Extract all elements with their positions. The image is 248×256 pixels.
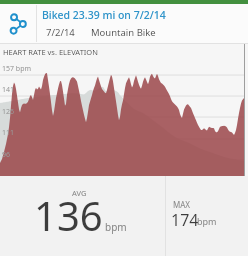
- button[interactable]: Share activity: [0, 4, 36, 43]
- staticText: 96: [2, 150, 11, 160]
- staticText: 7/2/14: [46, 26, 75, 39]
- staticText: Biked 23.39 mi on 7/2/14: [42, 8, 166, 22]
- button[interactable]: MAX: [166, 176, 248, 256]
- staticText: bpm: [105, 220, 127, 234]
- staticText: Mountain Bike: [91, 26, 156, 39]
- staticText: 157 bpm: [2, 64, 31, 74]
- staticText: MAX: [173, 199, 191, 210]
- staticText: 111: [2, 128, 15, 138]
- staticText: 126: [2, 107, 15, 117]
- button[interactable]: Share activity: [0, 4, 248, 43]
- staticText: HEART RATE vs. ELEVATION: [3, 47, 98, 57]
- staticText: 136: [34, 188, 103, 242]
- staticText: 141: [2, 85, 15, 95]
- staticText: bpm: [197, 215, 217, 227]
- staticText: 174: [171, 209, 199, 231]
- button[interactable]: AVG: [0, 176, 165, 256]
- staticText: AVG: [72, 188, 87, 198]
